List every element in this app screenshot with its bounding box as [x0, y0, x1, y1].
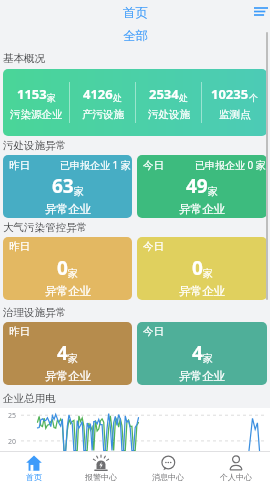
staticText: 昨日 — [9, 240, 30, 253]
staticText: 家 — [203, 267, 213, 280]
button[interactable]: 首页 — [0, 452, 67, 488]
staticText: 个 — [249, 92, 258, 103]
staticText: 监测点 — [219, 108, 251, 121]
staticText: 已申报企业 1 家 — [60, 158, 131, 172]
staticText: 异常企业 — [179, 202, 225, 216]
button[interactable]: 报警中心 — [67, 452, 134, 488]
staticText: 企业总用电 — [3, 392, 56, 405]
staticText: 2534 — [149, 85, 179, 103]
staticText: 全部 — [123, 28, 148, 44]
button[interactable]: 1153 — [3, 85, 69, 121]
staticText: 25 — [8, 411, 17, 421]
staticText: 4 — [192, 340, 203, 366]
button[interactable]: 昨日 — [3, 237, 132, 300]
staticText: 污染源企业 — [10, 108, 63, 121]
staticText: 基本概况 — [3, 52, 45, 65]
button[interactable]: 今日 — [137, 322, 267, 385]
staticText: 治理设施异常 — [3, 306, 66, 319]
staticText: 产污设施 — [82, 108, 124, 121]
button[interactable]: Menu — [251, 1, 270, 21]
staticText: 异常企业 — [45, 369, 91, 383]
staticText: 今日 — [143, 240, 164, 253]
staticText: 家 — [68, 352, 78, 365]
staticText: 10235 — [211, 85, 249, 103]
staticText: 家 — [68, 267, 78, 280]
staticText: 处 — [113, 92, 122, 103]
button[interactable]: 10235 — [202, 85, 267, 121]
button[interactable]: 4126 — [70, 85, 135, 121]
staticText: 异常企业 — [45, 284, 91, 298]
staticText: 首页 — [26, 472, 42, 482]
staticText: 0 — [57, 255, 68, 281]
staticText: 今日 — [143, 159, 164, 172]
staticText: 已申报企业 0 家 — [195, 158, 266, 172]
staticText: 异常企业 — [45, 202, 91, 216]
staticText: 污处设施 — [148, 108, 190, 121]
staticText: 家 — [203, 352, 213, 365]
staticText: 报警中心 — [85, 472, 117, 482]
staticText: 昨日 — [9, 159, 30, 172]
staticText: 家 — [208, 185, 218, 198]
staticText: 消息中心 — [152, 472, 184, 482]
staticText: 大气污染管控异常 — [3, 221, 87, 234]
staticText: 个人中心 — [220, 472, 252, 482]
staticText: 20 — [8, 437, 17, 447]
staticText: 1153 — [17, 85, 47, 103]
staticText: 首页 — [123, 5, 148, 21]
staticText: 处 — [179, 92, 188, 103]
staticText: 家 — [47, 92, 56, 103]
staticText: 今日 — [143, 325, 164, 338]
staticText: 异常企业 — [179, 284, 225, 298]
button[interactable]: 全部 — [0, 25, 270, 46]
button[interactable]: 个人中心 — [202, 452, 270, 488]
staticText: 4 — [57, 340, 68, 366]
staticText: 0 — [192, 255, 203, 281]
staticText: 昨日 — [9, 325, 30, 338]
button[interactable]: 2534 — [136, 85, 201, 121]
button[interactable]: 消息中心 — [134, 452, 202, 488]
staticText: 49 — [186, 173, 208, 199]
staticText: 异常企业 — [179, 369, 225, 383]
staticText: 63 — [52, 173, 74, 199]
button[interactable]: 今日 — [137, 155, 267, 218]
button[interactable]: 昨日 — [3, 322, 132, 385]
button[interactable]: 1153 — [3, 69, 267, 136]
staticText: 家 — [74, 185, 84, 198]
button[interactable]: 昨日 — [3, 155, 132, 218]
button[interactable]: 今日 — [137, 237, 267, 300]
staticText: 污处设施异常 — [3, 139, 66, 152]
staticText: 4126 — [83, 85, 113, 103]
